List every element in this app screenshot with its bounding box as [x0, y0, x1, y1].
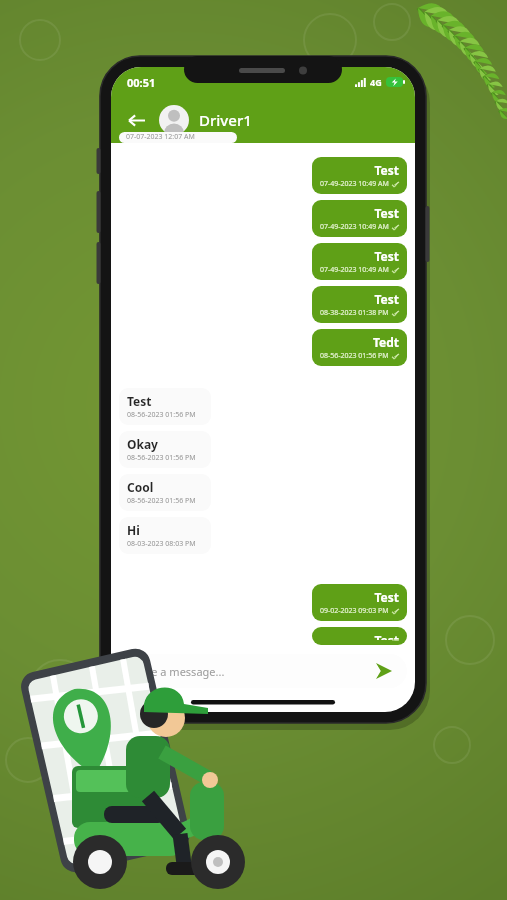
staticText: Cool: [127, 479, 154, 495]
staticText: 07-49-2023 10:49 AM: [320, 222, 389, 232]
button[interactable]: Okay: [119, 431, 211, 468]
button[interactable]: Test: [312, 584, 407, 621]
staticText: Test: [374, 248, 399, 264]
staticText: 00:51: [127, 75, 156, 90]
staticText: Okay: [127, 436, 158, 452]
staticText: Test: [127, 393, 152, 409]
staticText: Test: [374, 205, 399, 221]
staticText: Test: [374, 291, 399, 307]
staticText: 09-02-2023 09:03 PM: [320, 606, 389, 616]
staticText: Tedt: [372, 334, 399, 350]
staticText: 08-56-2023 01:56 PM: [320, 351, 389, 361]
staticText: 08-03-2023 08:03 PM: [127, 539, 196, 549]
staticText: 08-38-2023 01:38 PM: [320, 308, 389, 318]
staticText: 08-56-2023 01:56 PM: [127, 453, 196, 463]
button[interactable]: Test: [312, 627, 407, 645]
button[interactable]: Test: [312, 157, 407, 194]
button[interactable]: 07-07-2023 12:07 AM: [119, 132, 237, 143]
staticText: Test: [374, 632, 399, 640]
button[interactable]: Cool: [119, 474, 211, 511]
button[interactable]: Test: [312, 200, 407, 237]
button[interactable]: Test: [119, 388, 211, 425]
button[interactable]: Test: [312, 243, 407, 280]
staticText: Test: [374, 589, 399, 605]
button[interactable]: Type a message...: [119, 654, 407, 688]
staticText: Type a message...: [133, 664, 373, 679]
staticText: Driver1: [199, 110, 252, 130]
staticText: Test: [374, 162, 399, 178]
button[interactable]: Profile picture: [159, 105, 189, 135]
staticText: 4G: [370, 76, 382, 88]
staticText: Hi: [127, 522, 140, 538]
staticText: 07-49-2023 10:49 AM: [320, 265, 389, 275]
staticText: 08-56-2023 01:56 PM: [127, 496, 196, 506]
button[interactable]: Send: [373, 660, 395, 682]
button[interactable]: Tedt: [312, 329, 407, 366]
staticText: 07-49-2023 10:49 AM: [320, 179, 389, 189]
button[interactable]: Test: [312, 286, 407, 323]
staticText: 07-07-2023 12:07 AM: [126, 132, 195, 140]
staticText: 08-56-2023 01:56 PM: [127, 410, 196, 420]
button[interactable]: Hi: [119, 517, 211, 554]
button[interactable]: Back: [123, 107, 149, 133]
